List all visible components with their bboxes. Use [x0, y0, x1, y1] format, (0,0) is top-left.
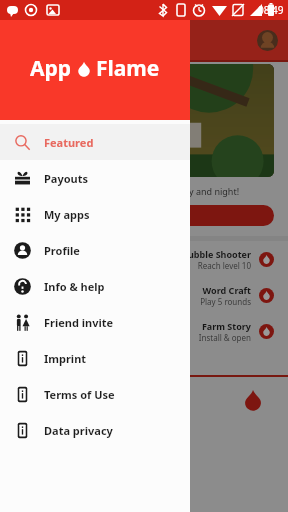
staticText: Bubble Shooter [182, 248, 251, 260]
staticText: Play 5 rounds [200, 296, 251, 307]
staticText: App [30, 54, 72, 83]
button[interactable]: Profile avatar [257, 30, 278, 51]
button[interactable]: Friend invite [0, 304, 190, 340]
button[interactable]: Data privacy [0, 412, 190, 448]
button[interactable] [14, 64, 274, 177]
button[interactable]: Word Craft [14, 277, 274, 313]
staticText: Data privacy [44, 423, 113, 438]
staticText: Farm Story [201, 320, 251, 332]
button[interactable]: Info & help [0, 268, 190, 304]
staticText: My apps [44, 207, 90, 222]
staticText: Featured [44, 135, 94, 150]
button[interactable]: Featured [0, 124, 190, 160]
staticText: Terms of Use [44, 387, 115, 402]
staticText: Flame [96, 54, 160, 83]
staticText: Install & open [198, 332, 251, 343]
staticText: Word Craft [202, 284, 251, 296]
staticText: Build and design your own landscapes day… [14, 185, 240, 197]
button[interactable]: Terms of Use [0, 376, 190, 412]
staticText: Reach level 10 [197, 260, 251, 271]
button[interactable]: Payouts [0, 160, 190, 196]
staticText: Profile [44, 243, 80, 258]
staticText: Info & help [44, 279, 105, 294]
button[interactable]: My apps [0, 196, 190, 232]
staticText: 08:49 [258, 3, 284, 17]
button[interactable]: Imprint [0, 340, 190, 376]
staticText: Friend invite [44, 315, 114, 330]
button[interactable]: POINTS [0, 20, 288, 60]
button[interactable]: Profile [0, 232, 190, 268]
staticText: Imprint [44, 351, 87, 366]
staticText: Recommended rewards [14, 355, 155, 371]
staticText: Payouts [44, 171, 89, 186]
button[interactable]: Farm Story [14, 313, 274, 349]
button[interactable]: PLAY NOW [14, 205, 274, 226]
button[interactable]: Bubble Shooter [14, 241, 274, 277]
